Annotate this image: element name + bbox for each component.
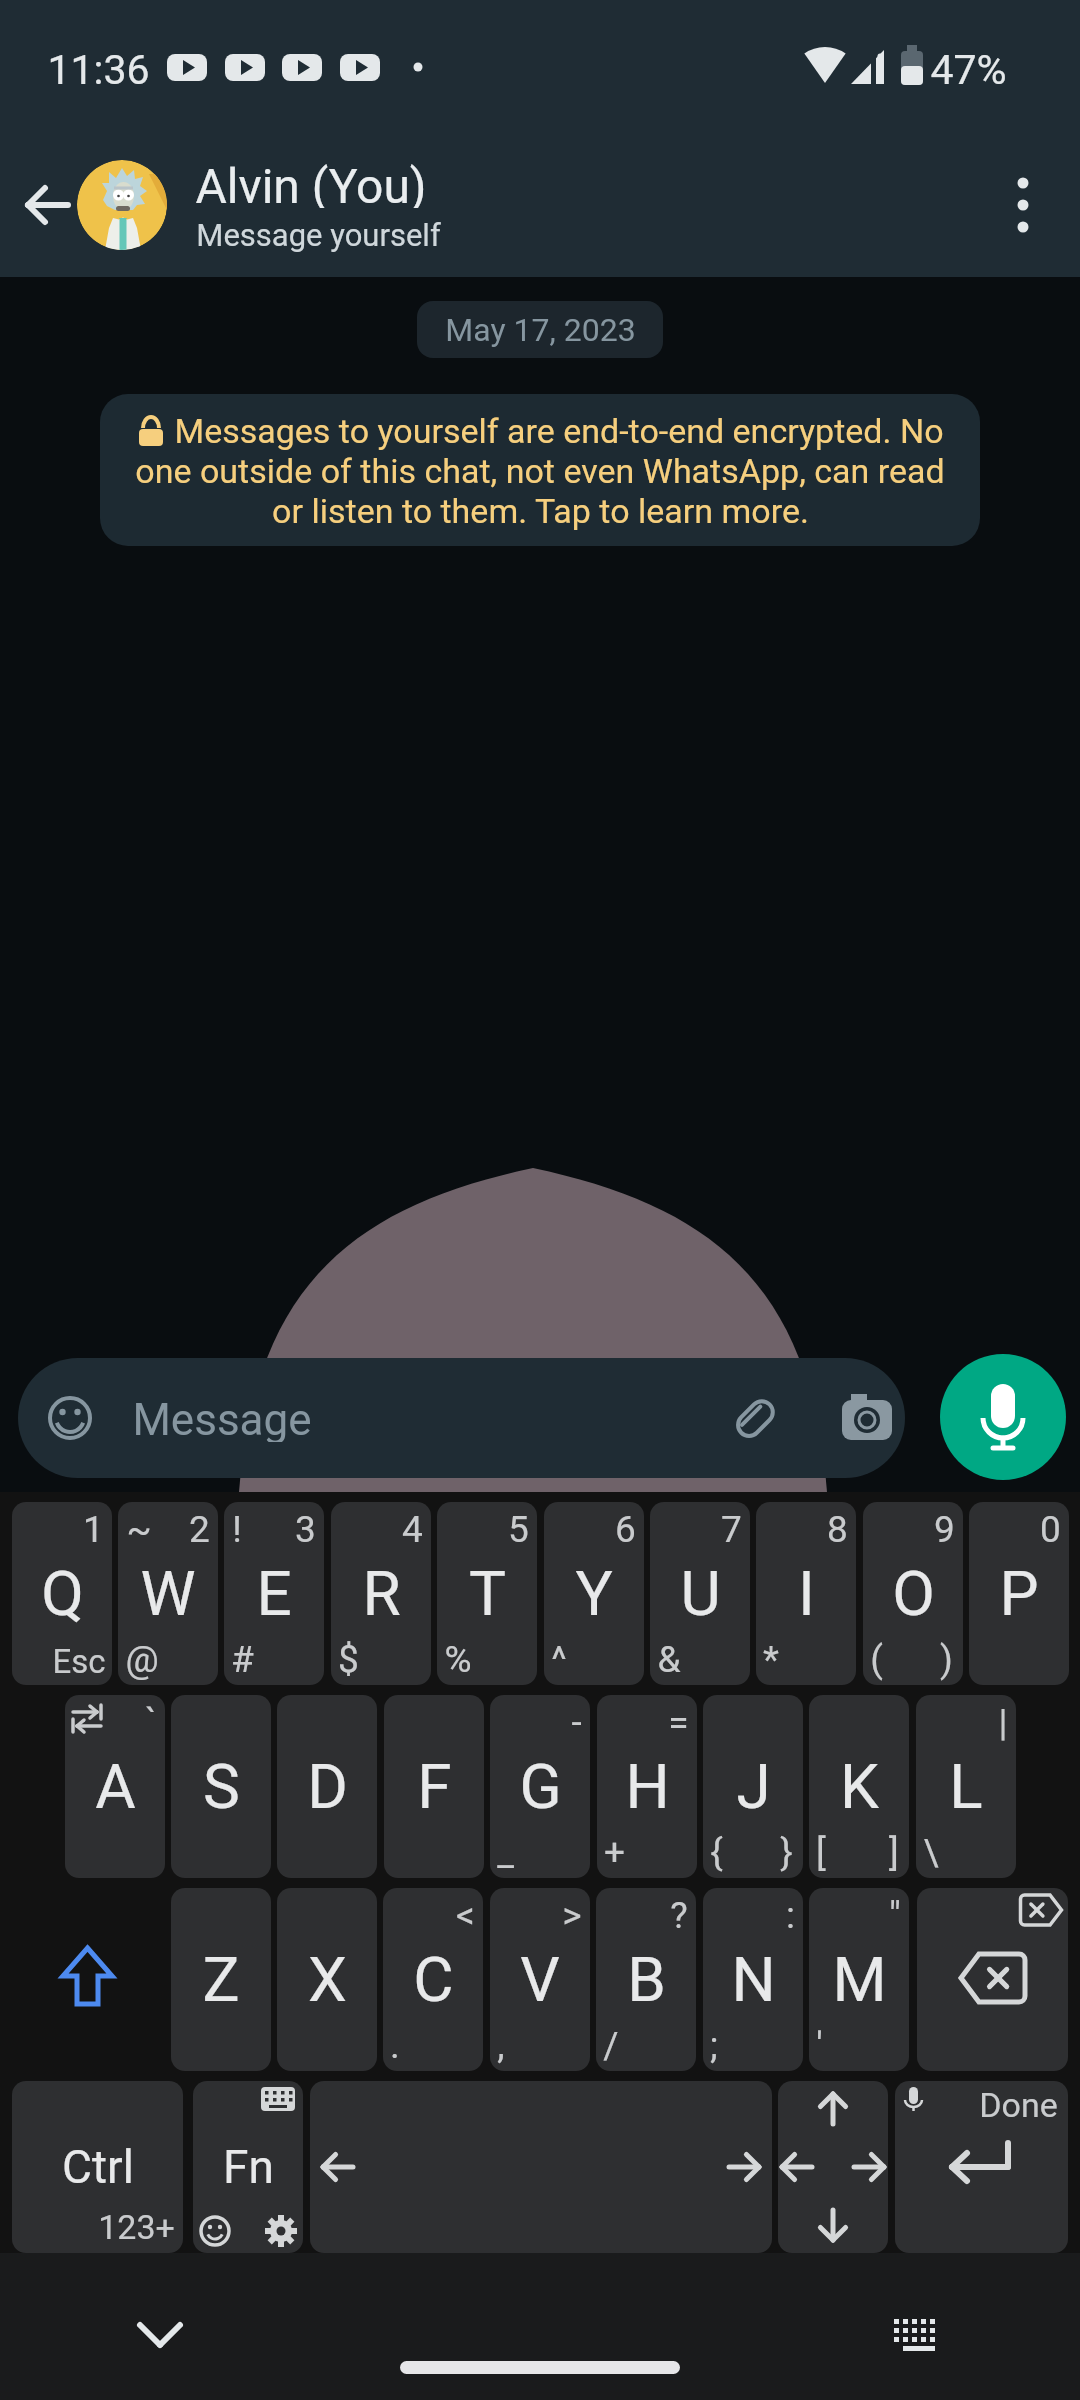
button[interactable]: Ctrl (12, 2081, 183, 2253)
button[interactable]: G (490, 1695, 590, 1878)
staticText: F (417, 1750, 452, 1823)
staticText: " (889, 1894, 901, 1937)
staticText: I (798, 1557, 815, 1630)
button[interactable] (120, 2295, 200, 2375)
staticText: | (998, 1701, 1008, 1744)
staticText: : (786, 1894, 795, 1937)
button[interactable]: X (277, 1888, 377, 2071)
button[interactable]: N (703, 1888, 803, 2071)
staticText: / (603, 2024, 619, 2067)
staticText: 5 (508, 1508, 529, 1551)
button[interactable] (880, 2295, 960, 2375)
staticText: R (362, 1557, 401, 1630)
button[interactable]: S (171, 1695, 271, 1878)
staticText: & (657, 1638, 681, 1681)
button[interactable] (100, 394, 980, 546)
button[interactable]: P (969, 1502, 1069, 1685)
button[interactable]: Done (895, 2081, 1068, 2253)
staticText: Message (132, 1394, 312, 1442)
staticText: B (627, 1943, 666, 2016)
staticText: Message yourself (196, 217, 441, 253)
button[interactable]: R (331, 1502, 431, 1685)
staticText: or listen to them. Tap to learn more. (272, 491, 809, 531)
button[interactable] (40, 1930, 135, 2025)
staticText: = (668, 1701, 689, 1744)
staticText: 2 (189, 1508, 210, 1551)
staticText: - (571, 1701, 582, 1744)
staticText: } (780, 1831, 793, 1874)
button[interactable]: Y (544, 1502, 644, 1685)
staticText: 4 (402, 1508, 423, 1551)
staticText: ( (870, 1638, 883, 1681)
staticText: May 17, 2023 (445, 311, 636, 349)
staticText: S (203, 1750, 240, 1823)
staticText: K (840, 1750, 879, 1823)
button[interactable]: F (384, 1695, 484, 1878)
staticText: Ctrl (62, 2140, 134, 2194)
button[interactable]: V (490, 1888, 590, 2071)
staticText: X (308, 1943, 347, 2016)
staticText: ! (232, 1508, 242, 1551)
staticText: Done (979, 2085, 1058, 2125)
button[interactable]: K (809, 1695, 909, 1878)
staticText: O (892, 1557, 935, 1630)
staticText: 7 (721, 1508, 742, 1551)
button[interactable]: I (756, 1502, 856, 1685)
staticText: E (256, 1557, 292, 1630)
staticText: 11:36 (47, 46, 150, 90)
staticText: Esc (52, 1642, 106, 1681)
staticText: ] (889, 1831, 899, 1874)
staticText: U (680, 1557, 721, 1630)
button[interactable]: O (863, 1502, 963, 1685)
button[interactable]: E (224, 1502, 324, 1685)
staticText: 123+ (98, 2207, 175, 2247)
button[interactable] (917, 1888, 1068, 2071)
button[interactable]: T (437, 1502, 537, 1685)
button[interactable] (310, 2081, 772, 2253)
staticText: V (520, 1943, 560, 2016)
button[interactable]: Fn (193, 2081, 303, 2253)
button[interactable] (940, 1354, 1066, 1480)
staticText: ) (940, 1638, 953, 1681)
button[interactable] (18, 1358, 905, 1478)
button[interactable]: D (277, 1695, 377, 1878)
button[interactable] (778, 2081, 888, 2253)
staticText: 1 (83, 1508, 104, 1551)
button[interactable]: Z (171, 1888, 271, 2071)
button[interactable] (77, 160, 167, 250)
staticText: \ (923, 1831, 939, 1874)
staticText: 47% (930, 46, 1007, 90)
button[interactable]: A (65, 1695, 165, 1878)
staticText: 8 (827, 1508, 848, 1551)
staticText: [ (816, 1831, 826, 1874)
staticText: L (949, 1750, 983, 1823)
staticText: Y (575, 1557, 613, 1630)
button[interactable]: J (703, 1695, 803, 1878)
staticText: _ (497, 1831, 514, 1874)
staticText: Q (41, 1557, 84, 1630)
staticText: { (710, 1831, 723, 1874)
staticText: ; (710, 2024, 718, 2067)
staticText: G (519, 1750, 562, 1823)
staticText: + (604, 1831, 625, 1874)
button[interactable]: H (597, 1695, 697, 1878)
button[interactable] (10, 170, 90, 240)
staticText: < (456, 1894, 475, 1937)
staticText: * (763, 1638, 779, 1681)
staticText: , (497, 2024, 505, 2067)
staticText: C (413, 1943, 454, 2016)
staticText: $ (338, 1638, 359, 1681)
button[interactable] (990, 165, 1056, 245)
button[interactable]: B (596, 1888, 696, 2071)
staticText: @ (125, 1638, 159, 1681)
button[interactable]: C (383, 1888, 483, 2071)
button[interactable]: M (809, 1888, 909, 2071)
button[interactable]: W (118, 1502, 218, 1685)
staticText: Messages to yourself are end-to-end encr… (174, 411, 944, 451)
staticText: P (999, 1557, 1039, 1630)
button[interactable]: U (650, 1502, 750, 1685)
staticText: ^ (551, 1638, 567, 1681)
button[interactable]: Q (12, 1502, 112, 1685)
staticText: ? (670, 1894, 688, 1937)
button[interactable]: L (916, 1695, 1016, 1878)
